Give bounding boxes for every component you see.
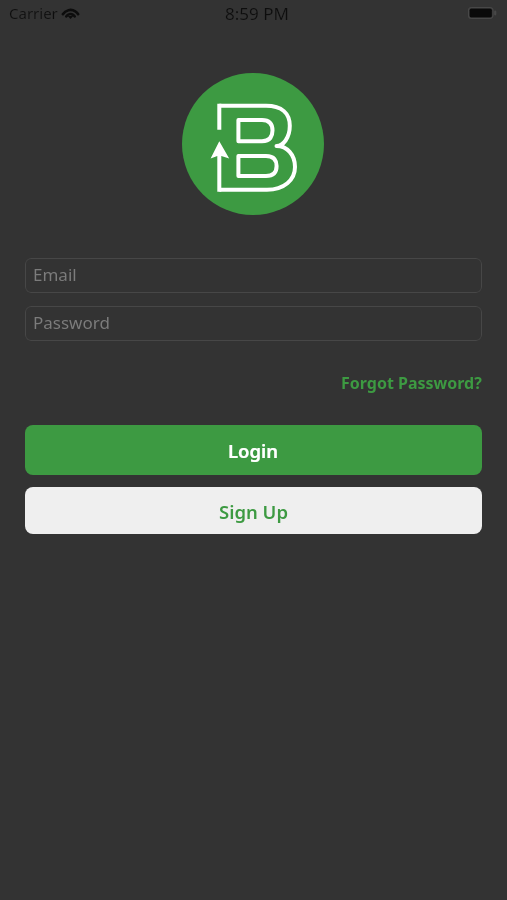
- button[interactable]: Email: [25, 258, 482, 293]
- staticText: Sign Up: [219, 499, 289, 524]
- staticText: Login: [228, 438, 279, 463]
- button[interactable]: Password: [25, 306, 482, 341]
- staticText: Carrier: [9, 3, 58, 23]
- button[interactable]: Sign Up: [25, 487, 482, 534]
- staticText: Email: [33, 263, 77, 286]
- staticText: Password: [33, 311, 110, 334]
- staticText: 8:59 PM: [225, 2, 289, 25]
- button[interactable]: Login: [25, 425, 482, 475]
- other: App logo: [182, 73, 324, 215]
- button[interactable]: Forgot Password?: [341, 372, 482, 394]
- staticText: Forgot Password?: [341, 372, 482, 394]
